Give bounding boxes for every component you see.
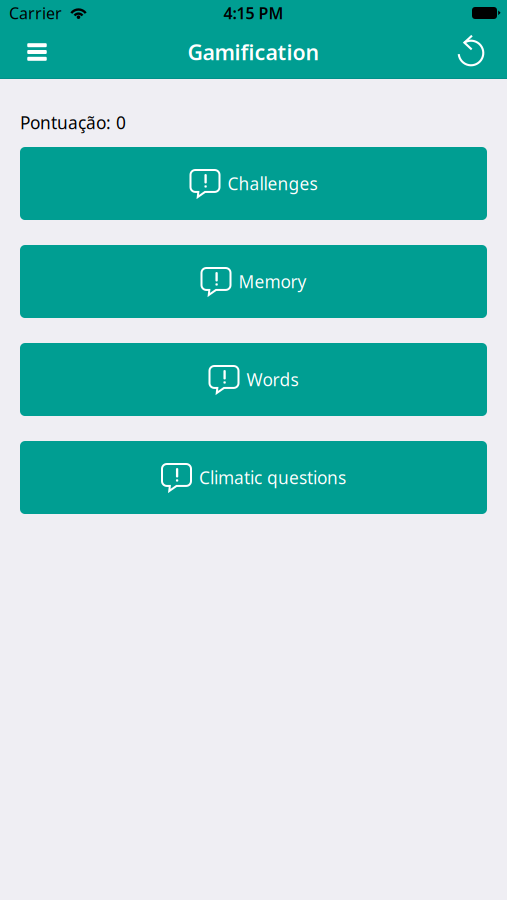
button[interactable]: Climatic questions [20, 441, 487, 514]
staticText: 4:15 PM [223, 2, 283, 24]
button[interactable]: Words [20, 343, 487, 416]
staticText: Words [246, 368, 298, 391]
button[interactable]: Reset score [447, 26, 495, 78]
staticText: Climatic questions [199, 466, 346, 489]
staticText: Challenges [227, 172, 317, 195]
button[interactable]: Challenges [20, 147, 487, 220]
staticText: Memory [238, 270, 306, 293]
button[interactable]: Memory [20, 245, 487, 318]
staticText: Carrier [9, 2, 62, 24]
button[interactable]: Menu [13, 26, 61, 78]
staticText: Pontuação: 0 [20, 111, 126, 134]
staticText: Gamification [187, 38, 319, 66]
